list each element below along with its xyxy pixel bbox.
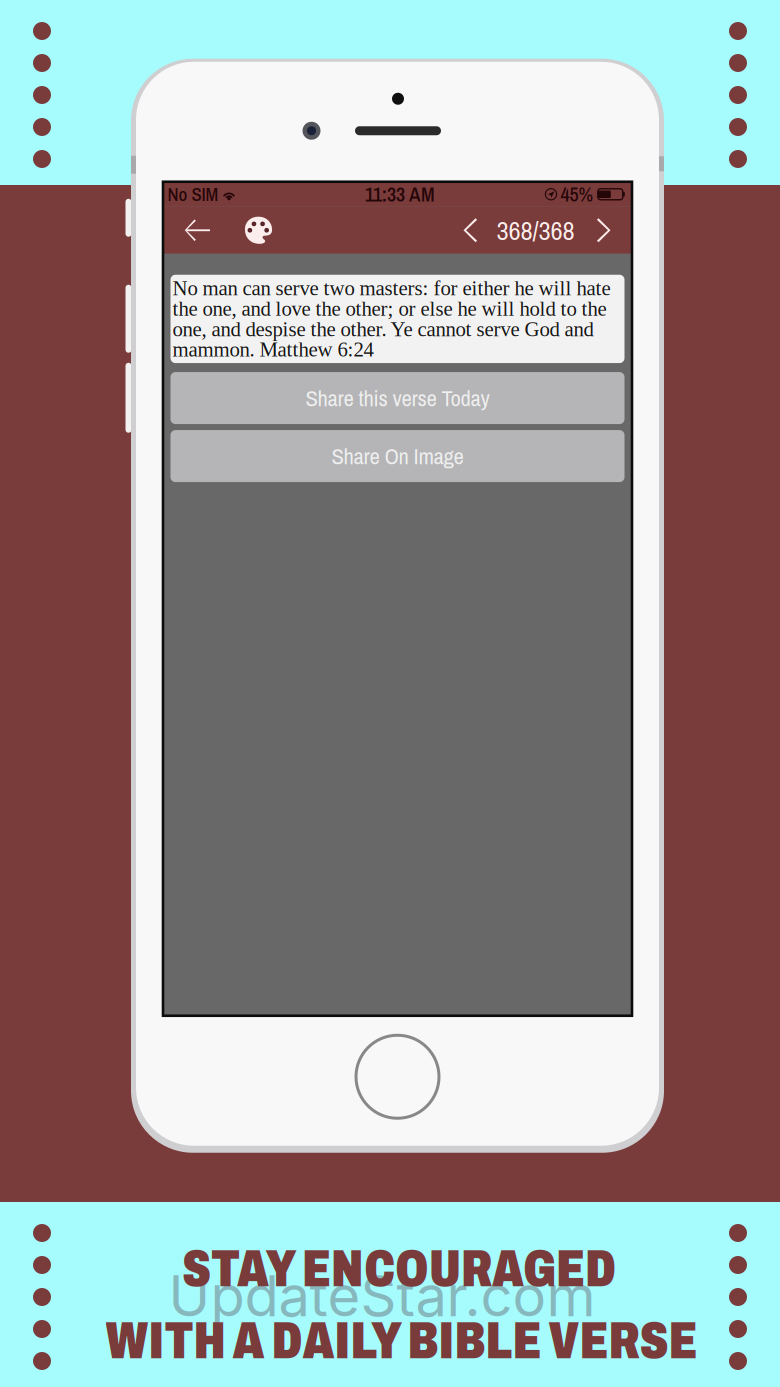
button[interactable]: Previous verse — [450, 207, 492, 254]
staticText: No man can serve two masters: for either… — [172, 277, 610, 361]
staticText: WITH A DAILY BIBLE VERSE — [105, 1313, 697, 1369]
staticText: Share this verse Today — [305, 383, 489, 413]
staticText: 45% — [560, 181, 593, 208]
staticText: STAY ENCOURAGED — [182, 1241, 616, 1297]
staticText: 11:33 AM — [365, 181, 435, 208]
button[interactable]: Change theme — [231, 207, 285, 254]
button[interactable]: Share this verse Today — [170, 372, 624, 424]
staticText: 368/368 — [496, 212, 574, 248]
staticText: UpdateStar.com — [168, 1262, 595, 1330]
button[interactable]: Next verse — [584, 207, 626, 254]
button[interactable]: Share On Image — [170, 430, 624, 482]
staticText: No SIM — [167, 182, 218, 207]
button[interactable]: Back — [166, 207, 228, 254]
staticText: Share On Image — [331, 441, 463, 471]
